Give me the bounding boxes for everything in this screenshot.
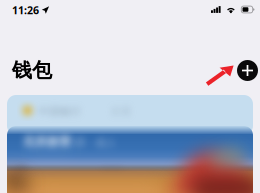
- staticText: 钱包: [12, 58, 52, 83]
- button[interactable]: 北京故宫: [7, 126, 253, 193]
- button[interactable]: Add: [237, 60, 258, 81]
- button[interactable]: 中国银行: [7, 95, 253, 135]
- staticText: 11:26: [12, 3, 39, 17]
